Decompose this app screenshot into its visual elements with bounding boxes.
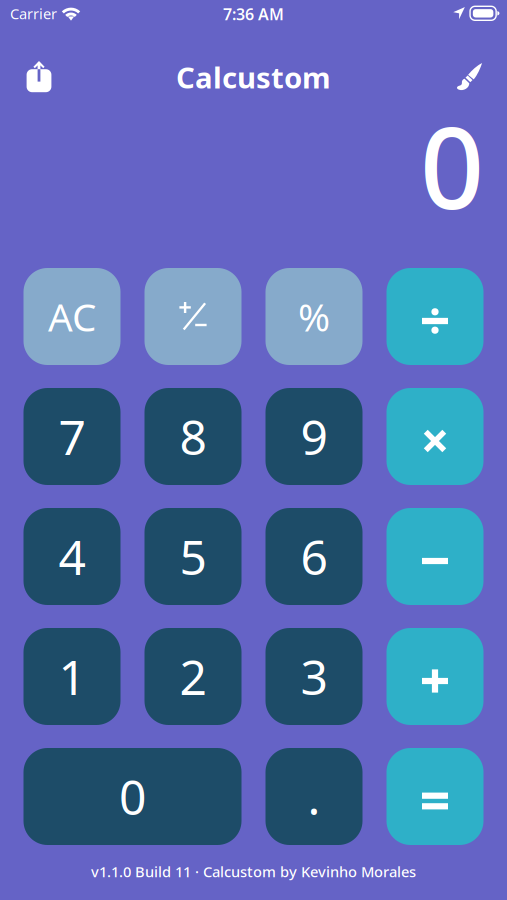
staticText: 1 (58, 645, 85, 708)
button[interactable]: 5 (144, 508, 241, 605)
button[interactable]: 4 (23, 508, 120, 605)
staticText: Carrier (10, 4, 57, 23)
button[interactable]: Plus (386, 628, 483, 725)
staticText: 2 (179, 645, 206, 708)
staticText: 6 (300, 525, 327, 588)
button[interactable]: 1 (23, 628, 120, 725)
button[interactable]: 8 (144, 388, 241, 485)
staticText: % (298, 291, 330, 342)
staticText: . (307, 765, 320, 828)
staticText: 5 (179, 525, 206, 588)
button[interactable]: Minus (386, 508, 483, 605)
button[interactable]: 0 (23, 748, 241, 845)
button[interactable]: Divide (386, 268, 483, 365)
staticText: 7:36 AM (223, 3, 284, 25)
button[interactable]: AC (23, 268, 120, 365)
staticText: 4 (58, 525, 85, 588)
button[interactable]: 2 (144, 628, 241, 725)
staticText: 3 (300, 645, 327, 708)
button[interactable]: Multiply (386, 388, 483, 485)
button[interactable]: % (265, 268, 362, 365)
button[interactable]: 6 (265, 508, 362, 605)
staticText: 0 (420, 91, 484, 240)
button[interactable]: 7 (23, 388, 120, 485)
staticText: AC (48, 291, 96, 342)
button[interactable]: . (265, 748, 362, 845)
staticText: 0 (119, 765, 146, 828)
staticText: 8 (179, 405, 206, 468)
staticText: 9 (300, 405, 327, 468)
button[interactable]: Plus or minus (144, 268, 241, 365)
staticText: Calcustom (176, 57, 331, 96)
button[interactable]: 9 (265, 388, 362, 485)
button[interactable]: Equals (386, 748, 483, 845)
staticText: 7 (58, 405, 85, 468)
button[interactable]: Customize (446, 55, 490, 99)
staticText: v1.1.0 Build 11 · Calcustom by Kevinho M… (91, 862, 416, 881)
button[interactable]: 3 (265, 628, 362, 725)
button[interactable]: Share (17, 55, 61, 99)
